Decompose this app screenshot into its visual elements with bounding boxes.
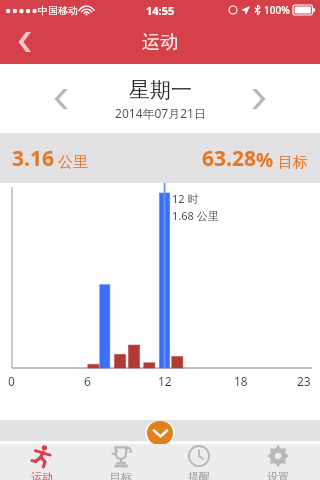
staticText: 1.68 公里 (172, 208, 219, 223)
staticText: 14:55 (146, 3, 175, 18)
staticText: 100% (264, 3, 290, 17)
button[interactable]: 目标 (85, 444, 157, 480)
staticText: 2014年07月21日 (115, 105, 206, 121)
staticText: 运动 (142, 31, 178, 54)
staticText: 中国移动 (38, 4, 78, 17)
staticText: 运动 (31, 470, 53, 480)
button[interactable]: 设置 (242, 444, 314, 480)
button[interactable]: Back (0, 20, 48, 64)
staticText: 12 (158, 373, 172, 389)
staticText: 星期一 (129, 77, 192, 103)
staticText: % (256, 147, 274, 173)
staticText: 6 (84, 373, 91, 389)
staticText: 18 (234, 373, 248, 389)
staticText: 12 时 (172, 191, 199, 206)
staticText: 3.16 (12, 144, 54, 173)
staticText: 目标 (110, 470, 132, 480)
staticText: 目标 (278, 153, 308, 172)
button[interactable]: 提醒 (163, 444, 235, 480)
staticText: 63.28 (202, 144, 256, 173)
button[interactable]: Expand (147, 421, 173, 445)
button[interactable]: Next day (244, 79, 274, 119)
staticText: 设置 (267, 470, 289, 480)
staticText: 提醒 (188, 470, 210, 480)
staticText: 0 (8, 373, 15, 389)
button[interactable]: 运动 (6, 444, 78, 480)
button[interactable]: Previous day (46, 79, 76, 119)
staticText: 23 (297, 373, 311, 389)
staticText: 公里 (58, 153, 88, 172)
